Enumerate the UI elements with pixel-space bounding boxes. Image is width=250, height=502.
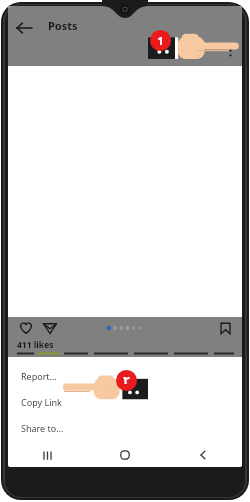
button[interactable]: Share post	[41, 319, 59, 337]
button[interactable]: Like	[17, 319, 35, 337]
button[interactable]: Recent apps	[8, 443, 86, 467]
staticText: 1	[157, 33, 164, 48]
button[interactable]: Back	[164, 443, 242, 467]
staticText: Copy Link	[21, 396, 62, 408]
staticText: Posts	[48, 18, 78, 33]
button[interactable]: Home	[86, 443, 164, 467]
button[interactable]: More options	[222, 42, 238, 58]
button[interactable]: Back	[10, 14, 38, 42]
button[interactable]: Copy Link	[8, 389, 242, 415]
button[interactable]: Report…	[8, 363, 242, 389]
staticText: Report…	[21, 370, 57, 382]
button[interactable]: Save	[216, 319, 234, 337]
staticText: ٢	[123, 374, 130, 387]
button[interactable]: Share to…	[8, 415, 242, 441]
staticText: 411 likes	[17, 339, 54, 351]
staticText: Share to…	[21, 422, 64, 434]
